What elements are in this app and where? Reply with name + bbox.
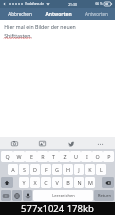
staticText: A xyxy=(11,166,15,173)
button[interactable]: Abbrechen xyxy=(0,8,39,20)
staticText: Hier mal ein Bilder der neuen xyxy=(4,23,76,30)
button[interactable]: F xyxy=(41,164,51,175)
staticText: Return xyxy=(98,193,111,198)
staticText: C xyxy=(44,179,48,186)
button[interactable]: U xyxy=(70,151,81,162)
button[interactable]: More xyxy=(86,137,115,149)
button[interactable]: Q xyxy=(1,151,13,162)
button[interactable]: J xyxy=(74,164,84,175)
staticText: J xyxy=(78,166,80,173)
button[interactable]: Z xyxy=(59,151,70,162)
staticText: U xyxy=(74,153,78,160)
button[interactable]: A xyxy=(8,164,18,175)
staticText: P xyxy=(107,153,111,160)
staticText: N xyxy=(77,179,82,186)
staticText: H xyxy=(66,166,70,173)
staticText: G xyxy=(55,166,59,173)
button[interactable]: B xyxy=(63,177,73,188)
button[interactable]: X xyxy=(30,177,40,188)
button[interactable]: E xyxy=(25,151,37,162)
staticText: Antworten xyxy=(45,11,72,18)
button[interactable]: Leerzeichen xyxy=(33,190,93,201)
button[interactable]: D xyxy=(30,164,40,175)
button[interactable]: W xyxy=(13,151,25,162)
button[interactable]: G xyxy=(52,164,62,175)
staticText: X xyxy=(33,179,37,186)
button[interactable]: Dictate xyxy=(23,190,32,201)
button[interactable]: R xyxy=(37,151,48,162)
button[interactable]: Y xyxy=(19,177,29,188)
staticText: B xyxy=(66,179,70,186)
staticText: Leerzeichen xyxy=(52,193,75,198)
staticText: O xyxy=(95,153,100,160)
staticText: Shifttasten. xyxy=(4,32,32,39)
staticText: D xyxy=(33,166,37,173)
button[interactable]: Antworten xyxy=(39,8,77,20)
staticText: V xyxy=(55,179,59,186)
button[interactable]: Language xyxy=(12,190,22,201)
button[interactable]: H xyxy=(63,164,73,175)
staticText: T xyxy=(52,153,55,160)
staticText: Antworten xyxy=(85,11,108,17)
staticText: W xyxy=(16,153,22,160)
staticText: 21:30 xyxy=(68,2,77,7)
staticText: R xyxy=(41,153,45,160)
staticText: S xyxy=(23,166,26,173)
button[interactable]: S xyxy=(19,164,29,175)
button[interactable]: Twitter xyxy=(57,137,86,149)
button[interactable]: L xyxy=(96,164,106,175)
staticText: Y xyxy=(22,179,26,186)
staticText: Vodafone.de xyxy=(25,2,44,6)
button[interactable]: Shift xyxy=(1,177,13,188)
staticText: Z xyxy=(63,153,67,160)
button[interactable]: Return xyxy=(94,190,114,201)
staticText: I xyxy=(86,153,88,160)
staticText: Q xyxy=(5,153,10,160)
staticText: Abbrechen xyxy=(8,11,32,17)
button[interactable]: Photos xyxy=(28,137,57,149)
staticText: 66 % xyxy=(95,2,103,6)
button[interactable]: T xyxy=(48,151,59,162)
button[interactable]: Numbers xyxy=(1,190,11,201)
button[interactable]: V xyxy=(52,177,62,188)
staticText: 577x1024 178kb xyxy=(21,202,94,215)
button[interactable]: P xyxy=(103,151,114,162)
button[interactable]: Camera xyxy=(0,137,28,149)
staticText: M xyxy=(88,179,93,186)
button[interactable]: K xyxy=(85,164,95,175)
staticText: K xyxy=(88,166,92,173)
button[interactable]: I xyxy=(81,151,92,162)
staticText: E xyxy=(30,153,33,160)
staticText: L xyxy=(100,166,103,173)
button[interactable]: N xyxy=(74,177,84,188)
button[interactable]: O xyxy=(92,151,103,162)
button[interactable]: C xyxy=(41,177,51,188)
button[interactable]: Backspace xyxy=(102,177,114,188)
button[interactable]: M xyxy=(85,177,95,188)
staticText: F xyxy=(45,166,48,173)
button[interactable]: Antworten xyxy=(77,8,115,20)
